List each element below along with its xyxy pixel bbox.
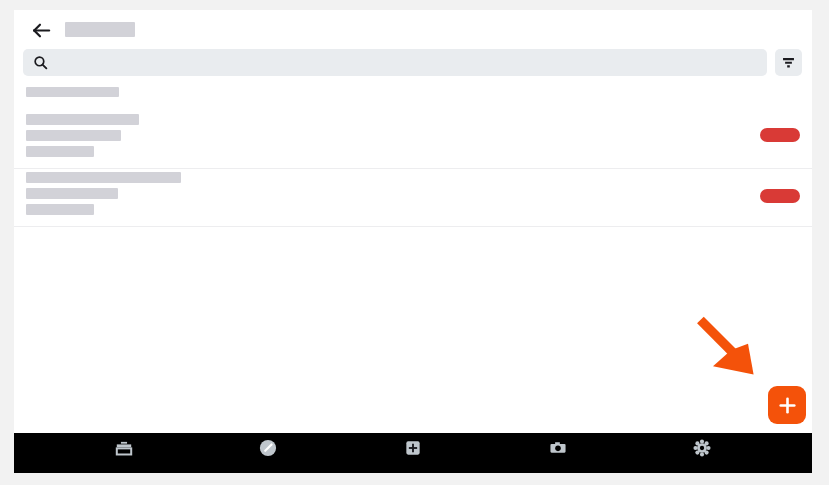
button[interactable]: Settings [667,433,737,473]
button[interactable]: Dashboard [233,433,303,473]
button[interactable]: Filter [775,49,802,76]
button[interactable]: Status badge [760,128,800,142]
button[interactable]: Jobs [89,433,159,473]
button[interactable] [14,111,812,168]
button[interactable]: Add [768,386,806,424]
button[interactable]: Status badge [760,189,800,203]
button[interactable]: Add [378,433,448,473]
button[interactable] [14,169,812,226]
button[interactable] [23,49,767,76]
button[interactable]: Back [28,17,54,43]
button[interactable]: Camera [523,433,593,473]
